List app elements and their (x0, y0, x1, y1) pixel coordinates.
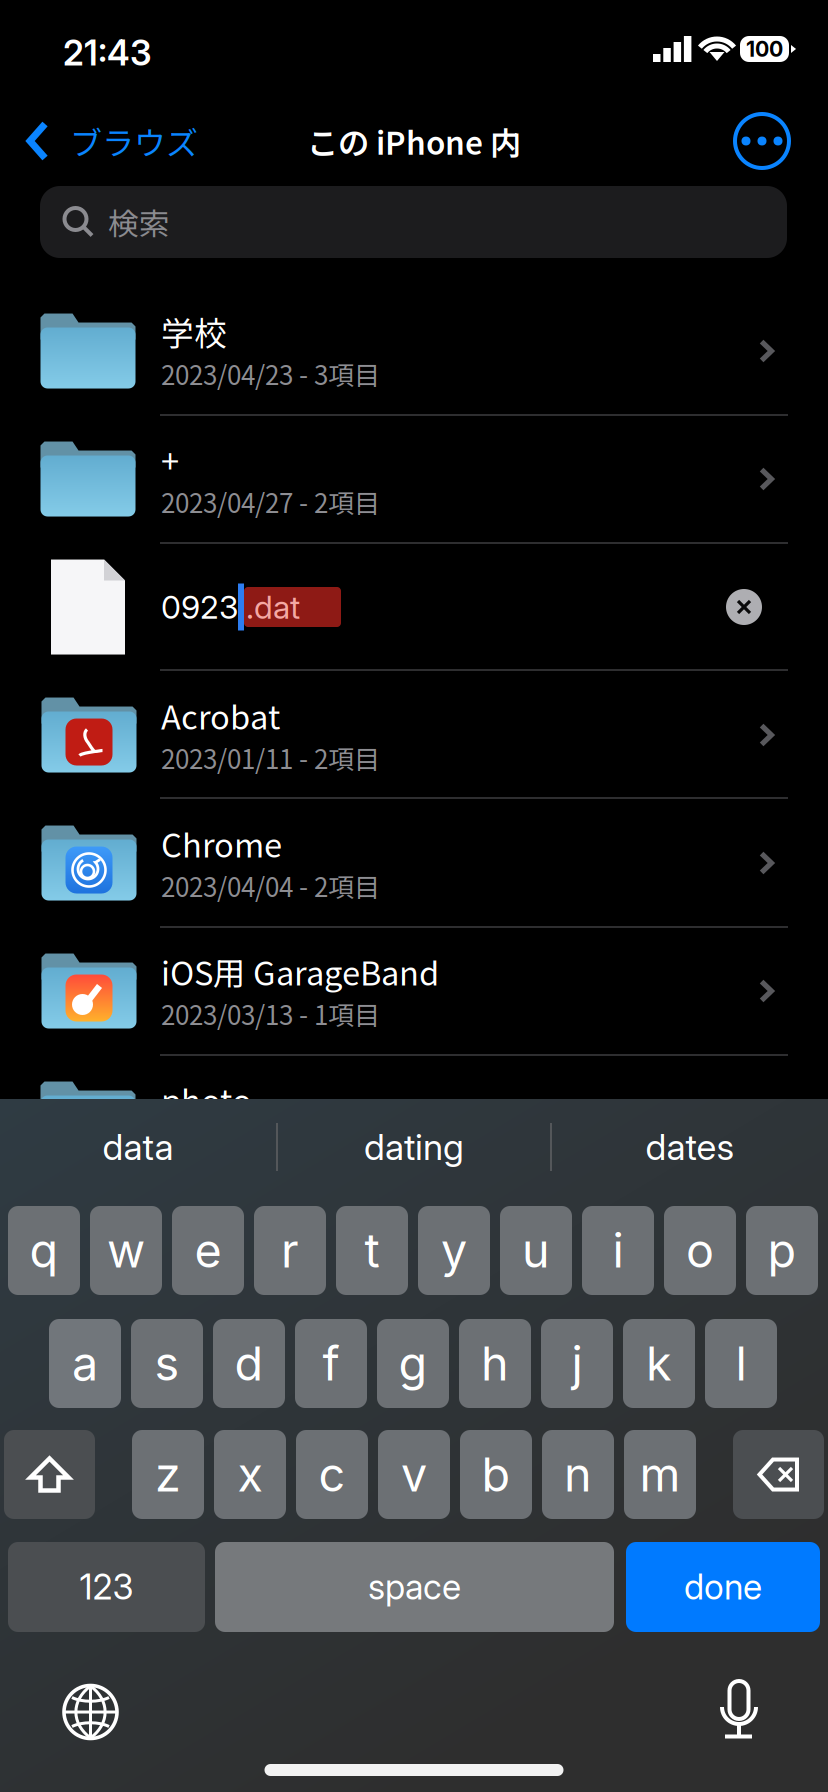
staticText: c (318, 1446, 345, 1503)
staticText: f (322, 1335, 339, 1392)
staticText: 学校 (161, 307, 227, 355)
staticText: photo (161, 1075, 252, 1123)
staticText: .dat (246, 588, 300, 626)
staticText: t (364, 1222, 379, 1279)
staticText: a (72, 1335, 98, 1392)
staticText: dating (364, 1125, 464, 1169)
staticText: e (194, 1222, 221, 1279)
staticText: u (522, 1222, 550, 1279)
button[interactable]: Delete (733, 1430, 824, 1519)
button[interactable]: g (377, 1319, 449, 1408)
button[interactable]: data (0, 1099, 276, 1195)
staticText: l (735, 1335, 746, 1392)
button[interactable]: f (295, 1319, 367, 1408)
staticText: Chrome (161, 819, 282, 867)
button[interactable]: s (131, 1319, 203, 1408)
staticText: i (612, 1222, 623, 1279)
button[interactable]: y (418, 1206, 490, 1295)
button[interactable]: 検索 (40, 186, 787, 258)
staticText: done (684, 1566, 762, 1608)
button[interactable]: b (460, 1430, 532, 1519)
button[interactable]: 学校 (0, 287, 828, 415)
button[interactable]: photo (0, 1055, 828, 1183)
button[interactable]: d (213, 1319, 285, 1408)
button[interactable]: + (0, 415, 828, 543)
button[interactable]: h (459, 1319, 531, 1408)
staticText: g (398, 1335, 427, 1392)
staticText: s (154, 1335, 179, 1392)
staticText: 21:43 (63, 32, 152, 74)
button[interactable]: c (296, 1430, 368, 1519)
button[interactable]: 123 (8, 1542, 205, 1632)
button[interactable]: Dictation (720, 1681, 758, 1739)
button[interactable]: w (90, 1206, 162, 1295)
staticText: iOS用 GarageBand (161, 947, 439, 995)
staticText: 0923 (161, 588, 238, 626)
button[interactable]: m (624, 1430, 696, 1519)
button[interactable]: r (254, 1206, 326, 1295)
button[interactable]: dates (552, 1099, 828, 1195)
button[interactable]: q (8, 1206, 80, 1295)
staticText: b (481, 1446, 510, 1503)
button[interactable]: iOS用 GarageBand (0, 927, 828, 1055)
button[interactable]: t (336, 1206, 408, 1295)
staticText: m (639, 1446, 680, 1503)
staticText: 2023/02/20 - 4項目 (161, 1123, 380, 1160)
staticText: 2023/04/04 - 2項目 (161, 867, 380, 904)
button[interactable]: i (582, 1206, 654, 1295)
button[interactable]: k (623, 1319, 695, 1408)
staticText: dates (645, 1125, 734, 1169)
staticText: r (281, 1222, 299, 1279)
staticText: d (234, 1335, 263, 1392)
button[interactable]: Shift (4, 1430, 95, 1519)
staticText: q (29, 1222, 58, 1279)
staticText: + (161, 435, 179, 483)
staticText: ブラウズ (70, 118, 198, 164)
button[interactable]: Chrome (0, 799, 828, 927)
staticText: data (102, 1125, 173, 1169)
button[interactable]: l (705, 1319, 777, 1408)
button[interactable]: n (542, 1430, 614, 1519)
button[interactable]: Acrobat (0, 671, 828, 799)
button[interactable]: j (541, 1319, 613, 1408)
button[interactable]: More (735, 114, 789, 168)
staticText: z (155, 1446, 181, 1503)
button[interactable]: space (215, 1542, 614, 1632)
staticText: p (767, 1222, 796, 1279)
button[interactable]: e (172, 1206, 244, 1295)
button[interactable]: ブラウズ (0, 96, 300, 186)
staticText: v (401, 1446, 427, 1503)
button[interactable]: o (664, 1206, 736, 1295)
staticText: space (368, 1566, 461, 1608)
staticText: 123 (79, 1566, 133, 1608)
staticText: この iPhone 内 (307, 118, 521, 164)
staticText: 2023/03/13 - 1項目 (161, 995, 380, 1032)
button[interactable]: 0923 (0, 543, 828, 671)
staticText: h (481, 1335, 509, 1392)
staticText: 2023/01/11 - 2項目 (161, 739, 380, 776)
button[interactable]: p (746, 1206, 818, 1295)
button[interactable]: dating (278, 1099, 550, 1195)
staticText: j (571, 1335, 582, 1392)
button[interactable]: u (500, 1206, 572, 1295)
staticText: x (237, 1446, 262, 1503)
staticText: o (686, 1222, 714, 1279)
staticText: 2023/04/27 - 2項目 (161, 483, 380, 520)
button[interactable]: z (132, 1430, 204, 1519)
button[interactable]: v (378, 1430, 450, 1519)
staticText: k (646, 1335, 672, 1392)
staticText: y (441, 1222, 467, 1279)
button[interactable]: Next keyboard (53, 1675, 127, 1749)
staticText: n (564, 1446, 592, 1503)
button[interactable]: a (49, 1319, 121, 1408)
staticText: 検索 (108, 200, 170, 244)
staticText: w (107, 1222, 145, 1279)
staticText: Acrobat (161, 691, 280, 739)
button[interactable]: x (214, 1430, 286, 1519)
button[interactable]: done (626, 1542, 820, 1632)
staticText: 100 (746, 36, 783, 62)
staticText: 2023/04/23 - 3項目 (161, 355, 380, 392)
